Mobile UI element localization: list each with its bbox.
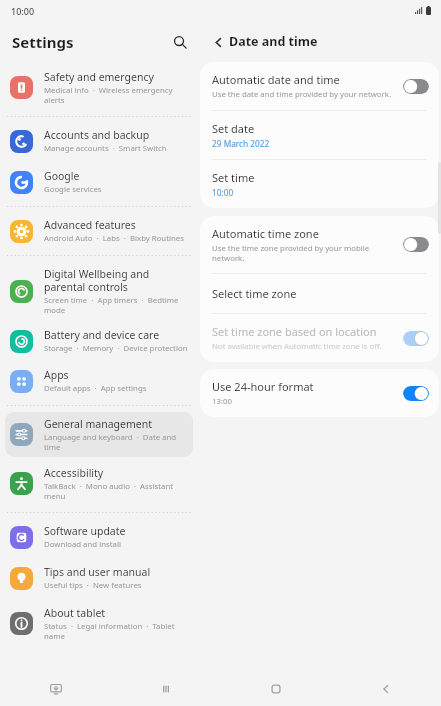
staticText: Battery and device care <box>44 328 160 342</box>
button[interactable]: About tablet <box>5 601 193 646</box>
button[interactable]: On <box>403 331 429 346</box>
button[interactable]: Battery and device care <box>5 323 193 359</box>
staticText: Not available when Automatic time zone i… <box>212 341 382 352</box>
button[interactable]: Home <box>221 672 331 706</box>
button[interactable]: Back <box>205 29 231 55</box>
staticText: Digital Wellbeing and parental controls <box>44 267 190 294</box>
staticText: Google <box>44 169 80 183</box>
button[interactable]: Automatic time zone <box>200 216 439 273</box>
button[interactable]: Screenshot <box>0 672 111 706</box>
button[interactable]: Use 24-hour format <box>200 369 439 417</box>
button[interactable]: On <box>403 386 429 401</box>
button[interactable]: Search <box>166 28 194 56</box>
staticText: Android Auto · Labs · Bixby Routines <box>44 233 184 244</box>
staticText: Use the date and time provided by your n… <box>212 89 392 100</box>
button[interactable]: Accessibility <box>5 461 193 506</box>
button[interactable]: Off <box>403 237 429 252</box>
staticText: Storage · Memory · Device protection <box>44 343 188 354</box>
staticText: Screen time · App timers · Bedtime mode <box>44 295 190 315</box>
staticText: Automatic time zone <box>212 226 319 241</box>
staticText: 13:00 <box>212 396 232 407</box>
staticText: Useful tips · New features <box>44 580 142 591</box>
button[interactable]: Google <box>5 164 193 200</box>
staticText: Manage accounts · Smart Switch <box>44 143 167 154</box>
button[interactable]: Software update <box>5 519 193 555</box>
staticText: Medical info · Wireless emergency alerts <box>44 85 190 105</box>
staticText: Automatic date and time <box>212 72 340 87</box>
staticText: Accounts and backup <box>44 128 150 142</box>
button[interactable]: General management <box>5 412 193 457</box>
staticText: TalkBack · Mono audio · Assistant menu <box>44 481 190 501</box>
button[interactable]: Set time zone based on location <box>200 314 439 362</box>
staticText: 10:00 <box>212 187 234 198</box>
staticText: Safety and emergency <box>44 70 154 84</box>
button[interactable]: Tips and user manual <box>5 560 193 596</box>
button[interactable]: Advanced features <box>5 213 193 249</box>
staticText: Date and time <box>229 33 318 50</box>
button[interactable]: Recents <box>111 672 221 706</box>
staticText: General management <box>44 417 152 431</box>
staticText: Accessibility <box>44 466 104 480</box>
staticText: Settings <box>12 32 74 52</box>
staticText: Google services <box>44 184 102 195</box>
staticText: 10:00 <box>11 5 35 17</box>
button[interactable]: Digital Wellbeing and parental controls <box>5 262 193 320</box>
staticText: 29 March 2022 <box>212 138 270 149</box>
staticText: Use 24-hour format <box>212 379 314 394</box>
staticText: Set date <box>212 121 255 136</box>
staticText: Status · Legal information · Tablet name <box>44 621 190 641</box>
staticText: Set time <box>212 170 255 185</box>
staticText: Set time zone based on location <box>212 324 377 339</box>
staticText: Default apps · App settings <box>44 383 147 394</box>
staticText: Select time zone <box>212 286 297 301</box>
button[interactable]: Safety and emergency <box>5 65 193 110</box>
button[interactable]: Accounts and backup <box>5 123 193 159</box>
button[interactable]: Apps <box>5 363 193 399</box>
staticText: Apps <box>44 368 69 382</box>
staticText: About tablet <box>44 606 106 620</box>
staticText: Download and install <box>44 539 121 550</box>
button[interactable]: Off <box>403 79 429 94</box>
button[interactable]: Set time <box>200 160 439 208</box>
button[interactable]: Automatic date and time <box>200 62 439 110</box>
staticText: Language and keyboard · Date and time <box>44 432 190 452</box>
staticText: Use the time zone provided by your mobil… <box>212 243 395 263</box>
staticText: Advanced features <box>44 218 136 232</box>
button[interactable]: Back <box>331 672 441 706</box>
staticText: Software update <box>44 524 126 538</box>
staticText: Tips and user manual <box>44 565 151 579</box>
button[interactable]: Set date <box>200 111 439 159</box>
button[interactable]: Select time zone <box>200 274 439 313</box>
